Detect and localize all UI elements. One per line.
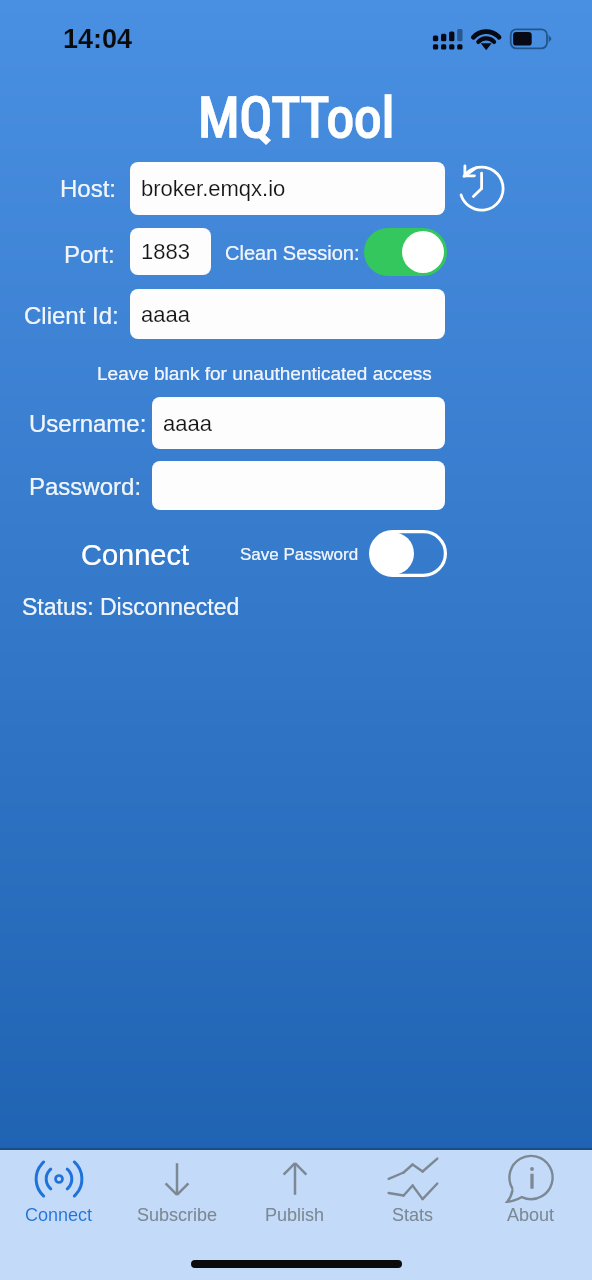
button[interactable]: Username: [29, 410, 147, 437]
button[interactable]: 1883 [130, 228, 211, 275]
staticText: aaaa [141, 302, 190, 327]
staticText: Publish [265, 1205, 325, 1225]
button[interactable]: Leave blank for unauthenticated access [97, 363, 432, 384]
staticText: Username: [29, 410, 147, 437]
button[interactable]: Port: [64, 241, 115, 268]
staticText: aaaa [163, 411, 212, 436]
button[interactable]: Connect [0, 1150, 118, 1238]
button[interactable]: Publish [236, 1150, 354, 1238]
staticText: Stats [392, 1205, 434, 1225]
staticText: Connect [81, 539, 190, 571]
button[interactable]: aaaa [152, 397, 445, 449]
button[interactable]: Stats [354, 1150, 472, 1238]
staticText: Client Id: [24, 302, 119, 329]
button[interactable]: Connect [81, 539, 190, 571]
staticText: About [507, 1205, 555, 1225]
button[interactable]: Save Password disabled [369, 530, 447, 577]
button[interactable]: Client Id: [24, 302, 119, 329]
button[interactable]: Connection history [453, 160, 510, 217]
button[interactable]: broker.emqx.io [130, 162, 445, 215]
button[interactable]: Password: [29, 473, 142, 500]
staticText: Connect [25, 1205, 93, 1225]
staticText: Clean Session: [225, 242, 360, 264]
button[interactable]: Save Password [240, 545, 359, 564]
staticText: Status: Disconnected [22, 594, 240, 620]
button[interactable]: About [472, 1150, 590, 1238]
staticText: Password: [29, 473, 142, 500]
staticText: Save Password [240, 545, 359, 564]
staticText: Leave blank for unauthenticated access [97, 363, 432, 384]
staticText: broker.emqx.io [141, 176, 286, 201]
button[interactable]: Clean Session: [225, 242, 360, 264]
button[interactable]: aaaa [130, 289, 445, 339]
staticText: Subscribe [137, 1205, 218, 1225]
staticText: Host: [60, 175, 117, 202]
staticText: MQTTool [198, 86, 395, 150]
button[interactable]: Status: Disconnected [22, 594, 240, 620]
button[interactable] [152, 461, 445, 510]
staticText: 1883 [141, 239, 190, 264]
staticText: 14:04 [63, 24, 133, 54]
button[interactable]: Clean Session enabled [364, 228, 447, 276]
button[interactable]: Host: [60, 175, 117, 202]
button[interactable]: Subscribe [118, 1150, 236, 1238]
staticText: Port: [64, 241, 115, 268]
